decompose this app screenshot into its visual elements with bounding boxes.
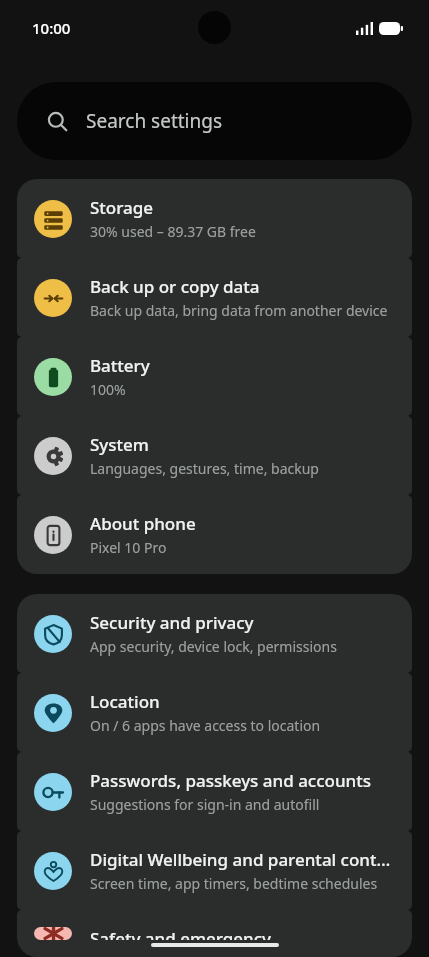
- staticText: Pixel 10 Pro: [90, 538, 167, 557]
- staticText: System: [90, 433, 149, 456]
- button[interactable]: Security and privacy: [17, 594, 412, 673]
- button[interactable]: Location: [17, 673, 412, 752]
- staticText: Digital Wellbeing and parental controls: [90, 848, 395, 871]
- staticText: Storage: [90, 196, 154, 219]
- staticText: Back up or copy data: [90, 275, 260, 298]
- staticText: Security and privacy: [90, 611, 254, 634]
- button[interactable]: About phone: [17, 495, 412, 574]
- staticText: Back up data, bring data from another de…: [90, 301, 388, 320]
- button[interactable]: System: [17, 416, 412, 495]
- staticText: 30% used – 89.37 GB free: [90, 222, 256, 241]
- button[interactable]: Battery: [17, 337, 412, 416]
- staticText: App security, device lock, permissions: [90, 637, 337, 656]
- button[interactable]: Back up or copy data: [17, 258, 412, 337]
- staticText: On / 6 apps have access to location: [90, 716, 321, 735]
- staticText: Suggestions for sign-in and autofill: [90, 795, 320, 814]
- staticText: Safety and emergency: [90, 927, 272, 940]
- staticText: Battery: [90, 354, 150, 377]
- button[interactable]: Digital Wellbeing and parental controls: [17, 831, 412, 910]
- staticText: Screen time, app timers, bedtime schedul…: [90, 874, 378, 893]
- button[interactable]: Storage: [17, 179, 412, 258]
- button[interactable]: Search settings: [17, 82, 412, 160]
- button[interactable]: Passwords, passkeys and accounts: [17, 752, 412, 831]
- staticText: Languages, gestures, time, backup: [90, 459, 319, 478]
- staticText: Location: [90, 690, 160, 713]
- staticText: 100%: [90, 380, 126, 399]
- button[interactable]: Safety and emergency: [17, 910, 412, 957]
- staticText: 10:00: [32, 18, 71, 38]
- staticText: About phone: [90, 512, 196, 535]
- staticText: Passwords, passkeys and accounts: [90, 769, 372, 792]
- staticText: Search settings: [86, 108, 223, 134]
